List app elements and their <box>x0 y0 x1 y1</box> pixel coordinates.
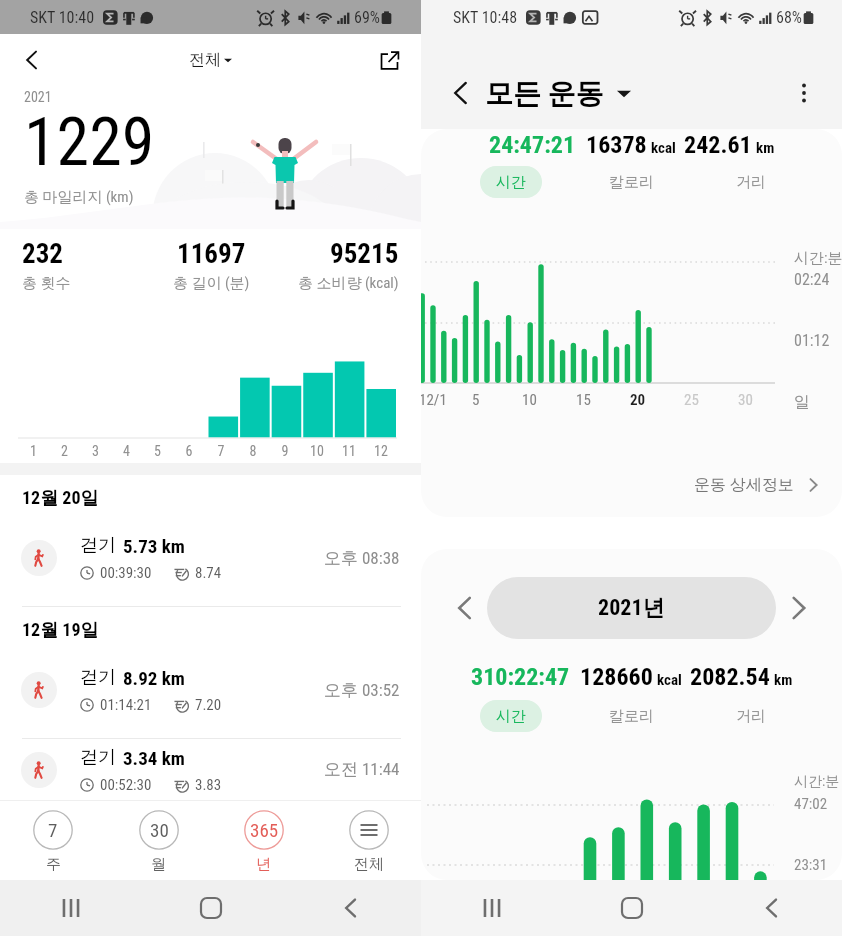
staticText: 47:02 <box>794 795 828 813</box>
button[interactable]: Previous year <box>443 586 487 630</box>
staticText: 칼로리 <box>609 707 654 726</box>
staticText: 시간 <box>496 707 526 726</box>
staticText: 걷기 <box>80 534 116 557</box>
staticText: 9 <box>269 443 301 459</box>
staticText: 1229 <box>24 104 155 181</box>
staticText: 8 <box>237 443 269 459</box>
staticText: 1 <box>18 443 49 459</box>
staticText: kcal <box>657 671 682 689</box>
button[interactable]: 칼로리 <box>593 700 670 732</box>
staticText: 시간:분 <box>794 773 840 791</box>
button[interactable]: 30 <box>106 801 211 880</box>
staticText: 68% <box>776 8 802 27</box>
staticText: 7 <box>205 443 237 459</box>
staticText: 8.74 <box>195 564 222 582</box>
staticText: 8.92 km <box>123 667 185 689</box>
staticText: 운동 상세정보 <box>694 475 794 495</box>
staticText: 거리 <box>736 707 766 726</box>
staticText: 12/1 <box>421 391 447 409</box>
staticText: 12월 19일 <box>22 619 99 642</box>
staticText: 오전 11:44 <box>324 759 400 780</box>
staticText: 7 <box>48 819 58 841</box>
staticText: 24:47:21 <box>489 131 576 159</box>
button[interactable]: 전체 <box>189 50 232 70</box>
staticText: 전체 <box>354 855 384 874</box>
button[interactable]: Back <box>443 75 479 111</box>
staticText: 12월 20일 <box>22 487 99 510</box>
button[interactable]: 거리 <box>720 166 782 198</box>
button[interactable]: Back <box>702 880 842 936</box>
button[interactable]: 모든 운동 <box>485 76 604 111</box>
button[interactable]: 365 <box>211 801 316 880</box>
staticText: 23:31 <box>794 856 828 874</box>
staticText: 일 <box>794 392 810 412</box>
button[interactable]: 운동 상세정보 <box>694 475 820 495</box>
staticText: 12 <box>365 443 397 459</box>
button[interactable]: Share <box>371 42 407 78</box>
staticText: 2021 <box>24 89 52 105</box>
staticText: 365 <box>250 819 279 841</box>
staticText: 3.34 km <box>123 747 185 769</box>
staticText: 95215 <box>330 238 399 270</box>
button[interactable]: 시간 <box>480 700 542 732</box>
button[interactable]: Recent apps <box>421 880 562 936</box>
staticText: 년 <box>256 855 271 874</box>
button[interactable]: Back <box>12 40 52 80</box>
button[interactable]: 7 <box>0 801 106 880</box>
staticText: 걷기 <box>80 666 116 689</box>
button[interactable]: Back <box>281 880 421 936</box>
button[interactable]: 걷기 <box>0 739 421 800</box>
button[interactable]: 칼로리 <box>593 166 670 198</box>
staticText: 11 <box>333 443 365 459</box>
staticText: kcal <box>651 139 676 157</box>
button[interactable]: Recent apps <box>0 880 141 936</box>
staticText: 00:52:30 <box>100 776 152 794</box>
staticText: 5.73 km <box>123 535 185 557</box>
staticText: 30 <box>738 391 753 409</box>
staticText: 전체 <box>189 50 221 70</box>
button[interactable]: Home <box>141 880 281 936</box>
staticText: 310:22:47 <box>471 663 570 691</box>
button[interactable]: All workouts <box>316 801 421 880</box>
staticText: 월 <box>151 855 166 874</box>
staticText: SKT 10:48 <box>453 8 518 27</box>
button[interactable]: Next year <box>776 586 820 630</box>
staticText: 5 <box>142 443 173 459</box>
staticText: 2 <box>49 443 80 459</box>
button[interactable]: 시간 <box>480 166 542 198</box>
staticText: km <box>774 671 793 689</box>
staticText: 242.61 <box>684 131 752 159</box>
staticText: 총 횟수 <box>22 274 71 293</box>
staticText: 128660 <box>580 663 653 691</box>
staticText: 02:24 <box>794 270 830 289</box>
staticText: 20 <box>630 391 646 409</box>
button[interactable]: 2021년 <box>487 577 776 639</box>
staticText: 4 <box>111 443 142 459</box>
staticText: 25 <box>684 391 699 409</box>
staticText: 00:39:30 <box>100 564 152 582</box>
button[interactable]: 걷기 <box>0 510 421 606</box>
staticText: 칼로리 <box>609 173 654 192</box>
staticText: 01:14:21 <box>100 696 152 714</box>
staticText: 2021년 <box>598 594 665 622</box>
staticText: 10 <box>522 391 537 409</box>
staticText: 16378 <box>586 131 647 159</box>
staticText: 7.20 <box>195 696 222 714</box>
staticText: 총 소비량 (kcal) <box>298 274 399 293</box>
staticText: 시간:분 <box>794 249 842 268</box>
staticText: 69% <box>354 8 380 27</box>
button[interactable]: Home <box>562 880 702 936</box>
staticText: 3.83 <box>195 776 222 794</box>
staticText: 걷기 <box>80 746 116 769</box>
button[interactable]: 거리 <box>720 700 782 732</box>
staticText: 6 <box>173 443 205 459</box>
staticText: 주 <box>46 855 61 874</box>
staticText: 15 <box>576 391 591 409</box>
staticText: 30 <box>150 819 169 841</box>
staticText: 총 마일리지 (km) <box>24 188 134 207</box>
button[interactable]: 걷기 <box>0 642 421 738</box>
button[interactable]: More options <box>786 75 822 111</box>
staticText: 오후 08:38 <box>324 548 400 569</box>
staticText: 총 길이 (분) <box>173 274 250 293</box>
staticText: 2082.54 <box>690 663 770 691</box>
